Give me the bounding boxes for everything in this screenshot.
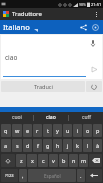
- button[interactable]: h: [53, 139, 62, 152]
- staticText: y: [56, 127, 59, 134]
- button[interactable]: r: [33, 124, 42, 137]
- staticText: h: [56, 142, 60, 149]
- staticText: b: [62, 157, 66, 164]
- staticText: r: [36, 127, 39, 134]
- button[interactable]: Enter: [86, 169, 102, 182]
- button[interactable]: q: [1, 124, 11, 137]
- button[interactable]: o: [83, 124, 92, 137]
- button[interactable]: c: [38, 154, 48, 167]
- staticText: n: [72, 157, 76, 164]
- button[interactable]: Shift: [1, 154, 15, 167]
- staticText: Traduttore: [12, 10, 42, 18]
- button[interactable]: Español: [28, 169, 76, 182]
- staticText: u: [66, 127, 70, 134]
- button[interactable]: z: [16, 154, 26, 167]
- button[interactable]: x: [27, 154, 37, 167]
- staticText: g: [46, 142, 50, 149]
- button[interactable]: j: [63, 139, 72, 152]
- staticText: q: [4, 127, 8, 134]
- button[interactable]: Italiano: [3, 20, 38, 34]
- button[interactable]: Listen: [90, 65, 98, 73]
- staticText: c: [42, 157, 45, 164]
- button[interactable]: f: [33, 139, 42, 152]
- button[interactable]: cuff: [69, 112, 103, 123]
- button[interactable]: s: [12, 139, 22, 152]
- button[interactable]: à: [93, 139, 102, 152]
- staticText: ciao: [46, 114, 56, 121]
- staticText: ?123: [5, 173, 14, 178]
- button[interactable]: u: [63, 124, 72, 137]
- button[interactable]: e: [23, 124, 32, 137]
- staticText: 21:51: [91, 2, 102, 7]
- staticText: x: [31, 157, 34, 164]
- staticText: Italiano: [3, 22, 30, 32]
- staticText: cuoi: [12, 114, 22, 121]
- button[interactable]: b: [59, 154, 68, 167]
- staticText: t: [47, 127, 49, 134]
- staticText: o: [86, 127, 90, 134]
- staticText: m: [81, 157, 87, 164]
- staticText: 98%: [79, 2, 86, 7]
- staticText: Español: [44, 173, 61, 179]
- staticText: Traduci: [34, 83, 53, 90]
- staticText: w: [15, 127, 20, 134]
- staticText: e: [26, 127, 30, 134]
- button[interactable]: m: [79, 154, 88, 167]
- button[interactable]: d: [23, 139, 32, 152]
- staticText: i: [77, 127, 79, 134]
- button[interactable]: Swap languages: [86, 81, 102, 92]
- button[interactable]: y: [53, 124, 62, 137]
- button[interactable]: t: [43, 124, 52, 137]
- button[interactable]: Share: [77, 21, 89, 33]
- staticText: à: [96, 142, 100, 149]
- button[interactable]: n: [69, 154, 78, 167]
- button[interactable]: Voice input: [88, 39, 97, 48]
- button[interactable]: cuoi: [0, 112, 33, 123]
- button[interactable]: l: [83, 139, 92, 152]
- staticText: cuff: [82, 114, 91, 121]
- button[interactable]: .: [77, 169, 85, 182]
- button[interactable]: v: [49, 154, 58, 167]
- button[interactable]: Symbols: [1, 169, 18, 182]
- staticText: a: [4, 142, 8, 149]
- staticText: p: [96, 127, 100, 134]
- button[interactable]: ,: [19, 169, 27, 182]
- button[interactable]: Traduci: [1, 81, 85, 92]
- button[interactable]: k: [73, 139, 82, 152]
- staticText: ciao: [5, 53, 18, 62]
- button[interactable]: g: [43, 139, 52, 152]
- button[interactable]: Detect language: [89, 21, 101, 33]
- staticText: z: [20, 157, 23, 164]
- button[interactable]: i: [73, 124, 82, 137]
- button[interactable]: a: [1, 139, 11, 152]
- staticText: d: [26, 142, 30, 149]
- staticText: s: [16, 142, 19, 149]
- staticText: k: [76, 142, 79, 149]
- staticText: l: [87, 142, 89, 149]
- button[interactable]: w: [12, 124, 22, 137]
- button[interactable]: ciao: [34, 112, 68, 123]
- staticText: j: [67, 142, 69, 149]
- staticText: ,: [22, 172, 24, 179]
- button[interactable]: Backspace: [89, 154, 102, 167]
- button[interactable]: More options: [92, 8, 100, 20]
- staticText: f: [37, 142, 39, 149]
- staticText: .: [80, 172, 82, 179]
- staticText: v: [52, 157, 55, 164]
- button[interactable]: p: [93, 124, 102, 137]
